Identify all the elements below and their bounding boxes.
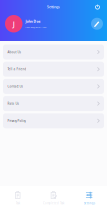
staticText: Rate Us bbox=[7, 102, 18, 106]
button[interactable]: About Us bbox=[3, 44, 104, 59]
button[interactable]: Settings bbox=[71, 186, 107, 210]
staticText: About Us bbox=[7, 50, 20, 54]
staticText: Settings bbox=[84, 201, 95, 205]
button[interactable]: Contact Us bbox=[3, 79, 104, 94]
button[interactable]: Task bbox=[0, 186, 36, 210]
button[interactable]: Privacy Policy bbox=[3, 113, 104, 128]
staticText: Settings bbox=[47, 5, 60, 9]
staticText: john.doe@gmail.com bbox=[25, 26, 46, 28]
button[interactable]: Completed Task bbox=[36, 186, 71, 210]
staticText: John Doe bbox=[25, 19, 40, 24]
staticText: Task bbox=[16, 201, 20, 205]
staticText: Tell a Friend bbox=[7, 67, 26, 71]
button[interactable]: Edit profile bbox=[91, 18, 103, 30]
staticText: J bbox=[13, 19, 15, 29]
staticText: Privacy Policy bbox=[7, 119, 25, 123]
button[interactable]: Tell a Friend bbox=[3, 62, 104, 77]
staticText: Completed Task bbox=[43, 201, 64, 205]
button[interactable]: Log out bbox=[95, 4, 100, 10]
staticText: Contact Us bbox=[7, 84, 22, 88]
button[interactable]: Rate Us bbox=[3, 96, 104, 111]
